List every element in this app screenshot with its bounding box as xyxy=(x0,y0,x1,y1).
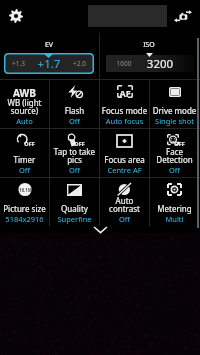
staticText: Focus area xyxy=(101,154,148,165)
staticText: +2.0 xyxy=(65,59,94,68)
staticText: Metering xyxy=(151,203,198,214)
staticText: 5184x2916 xyxy=(1,214,48,224)
staticText: Timer xyxy=(1,154,48,165)
staticText: 3200 xyxy=(142,56,178,72)
button[interactable]: OFF xyxy=(50,129,99,177)
staticText: Off xyxy=(1,165,48,175)
staticText: Superfine xyxy=(51,214,98,224)
staticText: Focus mode xyxy=(101,105,148,116)
staticText: Auto focus xyxy=(101,116,148,126)
staticText: OFF xyxy=(174,140,185,147)
button[interactable]: Focus area xyxy=(100,129,149,177)
button[interactable]: OFF xyxy=(0,129,49,177)
button[interactable]: OFF xyxy=(150,129,199,177)
staticText: Single shot xyxy=(151,116,198,126)
staticText: Quality xyxy=(51,203,98,214)
staticText: Drive mode xyxy=(151,105,198,116)
button[interactable]: Drive mode xyxy=(150,80,199,128)
staticText: Centre AF xyxy=(101,165,148,175)
button[interactable]: +1.3 xyxy=(4,53,94,74)
button[interactable]: Switch camera xyxy=(174,10,192,22)
button[interactable]: Metering xyxy=(150,178,199,226)
button[interactable]: Collapse panel xyxy=(92,224,109,236)
staticText: ISO xyxy=(134,40,164,50)
staticText: Multi xyxy=(151,214,198,224)
staticText: EV xyxy=(34,40,64,50)
staticText: AWB xyxy=(13,86,36,99)
staticText: Picture size xyxy=(1,203,48,214)
staticText: Face Detection xyxy=(151,146,198,165)
staticText: Auto xyxy=(1,116,48,126)
button[interactable]: 16.1M xyxy=(0,178,49,226)
button[interactable]: Auto contrast xyxy=(100,178,149,226)
button[interactable]: AF xyxy=(100,80,149,128)
button[interactable]: AWB xyxy=(0,80,49,128)
button[interactable]: Settings xyxy=(9,9,23,23)
staticText: +1.7 xyxy=(33,56,65,72)
staticText: Off xyxy=(151,165,198,175)
button[interactable]: Quality xyxy=(50,178,99,226)
staticText: 1600 xyxy=(106,59,142,68)
staticText: WB (light source) xyxy=(1,97,48,116)
staticText: AF xyxy=(119,87,131,99)
staticText: Off xyxy=(51,116,98,126)
staticText: Auto contrast xyxy=(101,195,148,214)
staticText: 16.1M xyxy=(19,187,32,193)
staticText: OFF xyxy=(74,140,85,147)
staticText: Flash xyxy=(51,105,98,116)
staticText: +1.3 xyxy=(4,59,33,68)
staticText: Tap to take pics xyxy=(51,146,98,165)
staticText: OFF xyxy=(24,140,35,147)
staticText: Off xyxy=(51,165,98,175)
button[interactable]: Flash xyxy=(50,80,99,128)
button[interactable]: 1600 xyxy=(106,55,194,72)
staticText: Off xyxy=(101,214,148,224)
